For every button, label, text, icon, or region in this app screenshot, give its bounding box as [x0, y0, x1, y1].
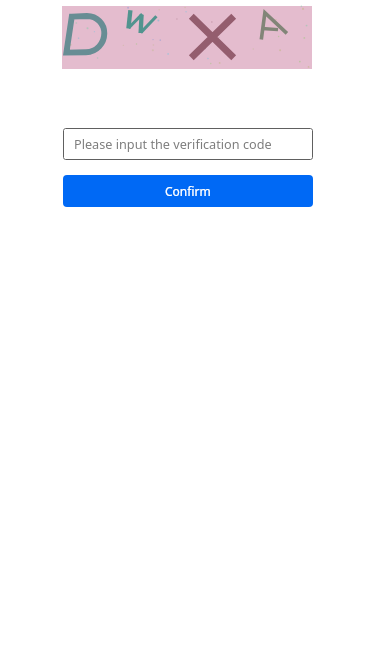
button[interactable]: Please input the verification code	[63, 128, 313, 160]
button[interactable]: Confirm	[63, 175, 313, 207]
staticText: Confirm	[165, 183, 211, 199]
staticText: Please input the verification code	[74, 135, 272, 152]
button[interactable]: Refresh verification code	[62, 6, 312, 69]
